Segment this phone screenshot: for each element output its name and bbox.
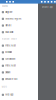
- button[interactable]: Division: [0, 69, 38, 76]
- staticText: Prime Num: [5, 44, 16, 47]
- button[interactable]: Vibrate: [0, 22, 38, 29]
- button[interactable]: Ringtone: [0, 9, 38, 15]
- staticText: Modulus: [5, 51, 12, 53]
- staticText: More: [2, 86, 7, 88]
- button[interactable]: Undefined ringtone: [0, 15, 38, 22]
- staticText: Security App: [41, 6, 52, 8]
- button[interactable]: Dual Audio: [0, 29, 38, 36]
- staticText: Prime Num: [5, 64, 16, 67]
- staticText: Division: [5, 71, 10, 74]
- staticText: Web app: [5, 94, 13, 96]
- staticText: Undefined ringtone: [5, 18, 21, 20]
- button[interactable]: Prime Num: [0, 62, 38, 69]
- button[interactable]: Combination: [0, 56, 38, 62]
- staticText: Ringtone: [5, 11, 12, 13]
- button[interactable]: Modulus: [0, 49, 38, 56]
- staticText: Combination: [5, 58, 15, 60]
- staticText: Number Theory: [2, 38, 17, 40]
- staticText: Sounds: [2, 5, 8, 7]
- staticText: Resource Mo: [5, 78, 17, 80]
- button[interactable]: Resource Mo: [0, 76, 38, 82]
- button[interactable]: Prime Num: [0, 42, 38, 49]
- staticText: Dual Audio: [5, 31, 13, 33]
- button[interactable]: Web app: [0, 91, 38, 98]
- staticText: Vibrate: [5, 24, 11, 27]
